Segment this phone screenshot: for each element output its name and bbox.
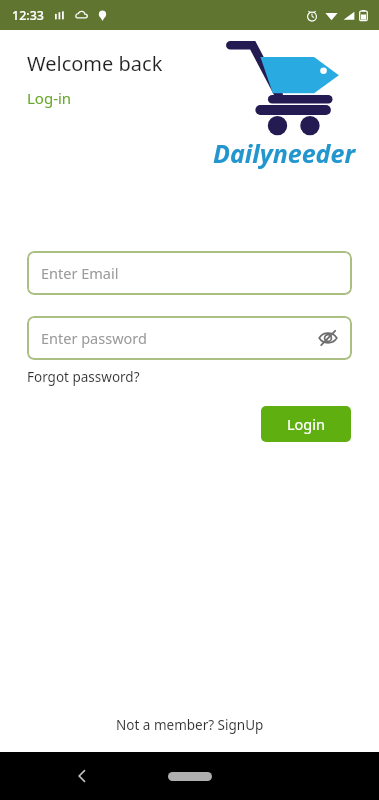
- staticText: Login: [287, 414, 325, 434]
- staticText: Welcome back: [27, 50, 163, 77]
- button[interactable]: Forgot password?: [27, 368, 140, 386]
- button[interactable]: Enter Email: [27, 251, 352, 295]
- button[interactable]: Log-in: [27, 88, 72, 108]
- button[interactable]: Not a member? SignUp: [116, 716, 264, 734]
- staticText: Forgot password?: [27, 368, 140, 386]
- button[interactable]: Enter password: [27, 316, 352, 360]
- staticText: Not a member? SignUp: [116, 716, 264, 734]
- staticText: 12:33: [12, 7, 45, 24]
- staticText: Log-in: [27, 88, 72, 108]
- button[interactable]: Login: [261, 406, 351, 442]
- button[interactable]: Show password: [315, 325, 341, 351]
- staticText: Enter password: [41, 328, 147, 348]
- staticText: Dailyneeder: [213, 136, 355, 170]
- staticText: Enter Email: [41, 263, 119, 283]
- button[interactable]: Back: [68, 762, 96, 790]
- button[interactable]: Home: [168, 772, 212, 781]
